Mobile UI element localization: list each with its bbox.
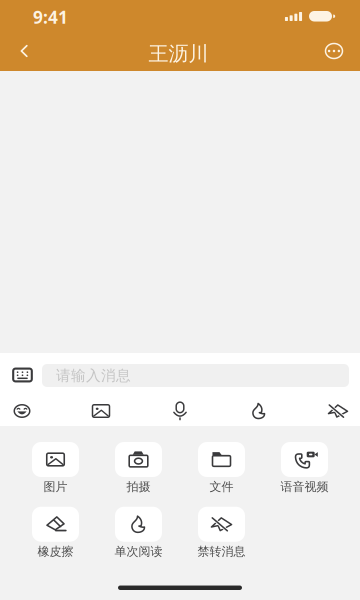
button[interactable]: 单次阅读 bbox=[97, 507, 180, 559]
staticText: 拍摄 bbox=[126, 479, 150, 494]
staticText: 请输入消息 bbox=[56, 366, 131, 384]
button[interactable]: 文件 bbox=[180, 442, 263, 494]
button[interactable]: Disable forwarding bbox=[318, 396, 358, 426]
button[interactable]: Voice message bbox=[160, 396, 200, 426]
button[interactable]: Back bbox=[7, 33, 43, 69]
button[interactable]: Photo bbox=[81, 396, 121, 426]
staticText: 文件 bbox=[209, 479, 233, 494]
button[interactable]: Emoji bbox=[2, 396, 42, 426]
staticText: 橡皮擦 bbox=[37, 544, 73, 559]
button[interactable]: 橡皮擦 bbox=[14, 507, 97, 559]
button[interactable]: More bbox=[316, 33, 352, 69]
button[interactable]: 语音视频 bbox=[263, 442, 346, 494]
button[interactable]: Burn after reading bbox=[239, 396, 279, 426]
staticText: 9:41 bbox=[33, 5, 68, 28]
button[interactable]: 禁转消息 bbox=[180, 507, 263, 559]
staticText: 单次阅读 bbox=[114, 544, 162, 559]
button[interactable]: 图片 bbox=[14, 442, 97, 494]
button[interactable]: Keyboard bbox=[5, 360, 39, 390]
staticText: 语音视频 bbox=[280, 479, 328, 494]
staticText: 王沥川 bbox=[148, 41, 208, 66]
staticText: 图片 bbox=[43, 479, 67, 494]
staticText: 禁转消息 bbox=[197, 544, 245, 559]
button[interactable]: 拍摄 bbox=[97, 442, 180, 494]
button[interactable]: 请输入消息 bbox=[42, 364, 349, 387]
